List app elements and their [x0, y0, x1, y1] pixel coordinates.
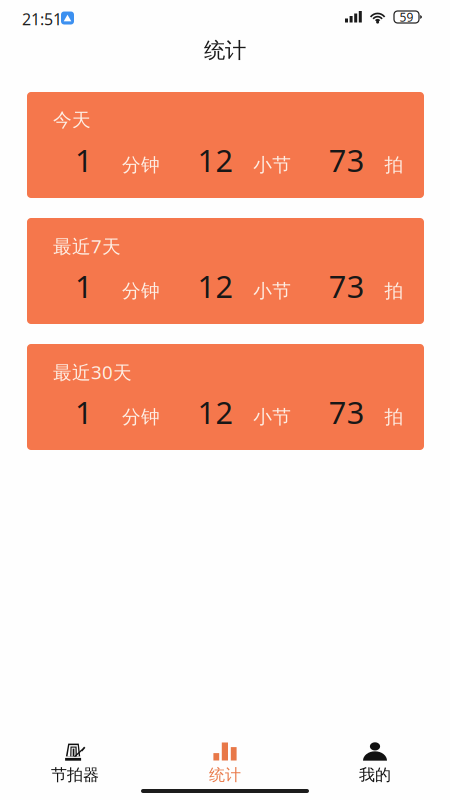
staticText: 12: [197, 140, 233, 180]
staticText: 73: [329, 266, 365, 306]
button[interactable]: 节拍器: [0, 742, 150, 786]
staticText: 小节: [253, 279, 291, 302]
staticText: 统计: [204, 37, 246, 64]
staticText: 12: [197, 392, 233, 432]
staticText: 我的: [359, 765, 391, 785]
staticText: 分钟: [122, 279, 160, 302]
staticText: 1: [75, 140, 93, 180]
staticText: 12: [197, 266, 233, 306]
staticText: 21:51: [22, 8, 62, 30]
staticText: 拍: [385, 279, 404, 302]
staticText: 小节: [253, 153, 291, 176]
staticText: 最近7天: [53, 234, 121, 258]
staticText: 拍: [385, 153, 404, 176]
staticText: 最近30天: [53, 360, 132, 384]
staticText: 73: [329, 392, 365, 432]
staticText: 1: [75, 392, 93, 432]
staticText: 59: [399, 9, 413, 25]
staticText: 统计: [209, 765, 241, 785]
staticText: 分钟: [122, 405, 160, 428]
button[interactable]: 我的: [300, 742, 450, 786]
staticText: 今天: [53, 108, 91, 131]
staticText: 分钟: [122, 153, 160, 176]
staticText: 拍: [385, 405, 404, 428]
staticText: 73: [329, 140, 365, 180]
staticText: 1: [75, 266, 93, 306]
staticText: 节拍器: [51, 765, 99, 785]
button[interactable]: 统计: [150, 742, 300, 786]
staticText: 小节: [253, 405, 291, 428]
